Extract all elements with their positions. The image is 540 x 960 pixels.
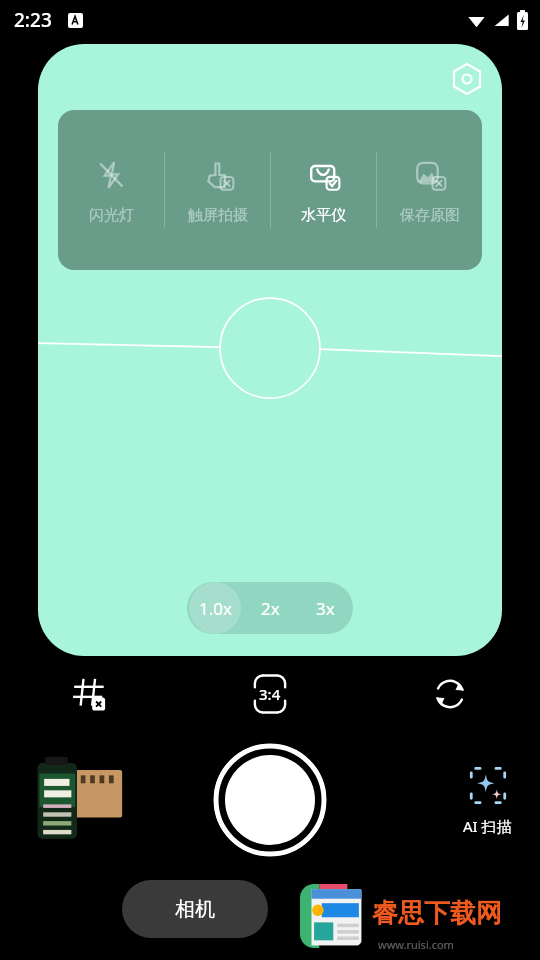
button[interactable]: 触屏拍摄 (165, 148, 270, 233)
staticText: www.ruisi.com (378, 937, 454, 952)
button[interactable]: 闪光灯 (58, 148, 164, 233)
staticText: 水平仪 (301, 206, 346, 225)
staticText: 闪光灯 (89, 206, 134, 225)
button[interactable]: 1.0x (187, 582, 243, 634)
staticText: 保存原图 (400, 206, 460, 225)
button[interactable]: 3x (298, 582, 353, 634)
button[interactable]: Gallery (30, 756, 124, 844)
staticText: 触屏拍摄 (188, 206, 248, 225)
button[interactable]: Filters (444, 56, 490, 102)
button[interactable]: Grid off (0, 668, 180, 720)
staticText: 2x (261, 597, 280, 620)
staticText: 3x (316, 597, 335, 620)
button[interactable]: Switch camera (360, 668, 540, 720)
button[interactable]: Shutter (213, 743, 327, 857)
staticText: 3:4 (259, 684, 281, 704)
staticText: 相机 (175, 897, 215, 922)
staticText: AI 扫描 (463, 816, 512, 836)
button[interactable]: 2x (243, 582, 298, 634)
button[interactable]: AI 扫描 (457, 758, 518, 842)
button[interactable]: 水平仪 (271, 148, 376, 233)
staticText: 1.0x (199, 597, 232, 620)
button[interactable]: 保存原图 (377, 148, 482, 233)
button[interactable]: 相机 (122, 880, 268, 938)
staticText: 睿思下载网 (372, 897, 502, 930)
button[interactable]: 3:4 (180, 668, 360, 720)
staticText: 2:23 (14, 7, 52, 33)
